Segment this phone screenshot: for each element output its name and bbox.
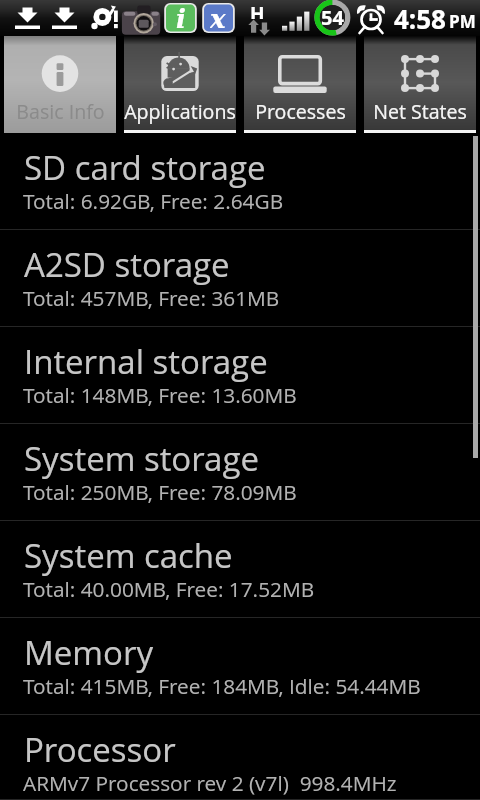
staticText: Total: 457MB, Free: 361MB xyxy=(23,284,280,312)
staticText: Internal storage xyxy=(24,339,268,384)
button[interactable]: System storage xyxy=(0,424,480,521)
staticText: Total: 415MB, Free: 184MB, Idle: 54.44MB xyxy=(23,672,421,700)
staticText: i xyxy=(176,4,186,33)
button[interactable]: Memory xyxy=(0,618,480,715)
staticText: PM xyxy=(449,10,476,33)
staticText: Net States xyxy=(373,98,467,125)
staticText: H xyxy=(250,1,265,19)
button[interactable]: System cache xyxy=(0,521,480,618)
button[interactable]: Processor xyxy=(0,715,480,800)
staticText: 54 xyxy=(321,4,344,31)
staticText: Total: 148MB, Free: 13.60MB xyxy=(23,381,297,409)
button[interactable]: SD card storage xyxy=(0,133,480,230)
staticText: ARMv7 Processor rev 2 (v7l) 998.4MHz xyxy=(23,769,397,797)
staticText: Applications xyxy=(124,98,236,125)
button[interactable]: Processes xyxy=(244,36,356,133)
staticText: Total: 40.00MB, Free: 17.52MB xyxy=(23,575,315,603)
button[interactable]: Internal storage xyxy=(0,327,480,424)
staticText: Total: 250MB, Free: 78.09MB xyxy=(23,478,297,506)
staticText: Processor xyxy=(24,727,176,772)
staticText: SD card storage xyxy=(24,145,266,190)
button[interactable]: A2SD storage xyxy=(0,230,480,327)
button[interactable]: Net States xyxy=(364,36,476,133)
staticText: x xyxy=(210,4,226,33)
staticText: 4:58 xyxy=(394,1,446,36)
staticText: Processes xyxy=(255,98,346,125)
staticText: Basic Info xyxy=(16,98,105,125)
staticText: Memory xyxy=(24,630,154,675)
button[interactable]: Basic Info xyxy=(4,36,116,133)
staticText: System cache xyxy=(24,533,233,578)
staticText: System storage xyxy=(24,436,259,481)
staticText: A2SD storage xyxy=(24,242,230,287)
staticText: Total: 6.92GB, Free: 2.64GB xyxy=(23,187,284,215)
button[interactable]: Applications xyxy=(124,36,236,133)
